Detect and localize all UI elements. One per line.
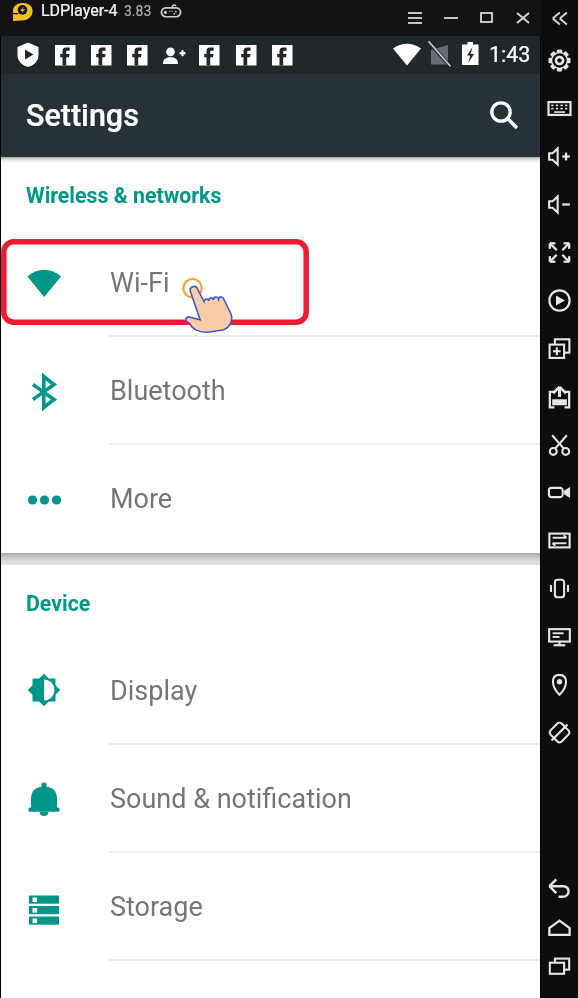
staticText: 1:43 xyxy=(489,42,531,67)
staticText: More xyxy=(110,483,173,515)
button[interactable]: Settings xyxy=(541,36,578,84)
staticText: Display xyxy=(110,675,198,707)
button[interactable]: Operation recorder xyxy=(541,276,578,324)
button[interactable]: Maximize xyxy=(469,0,505,36)
button[interactable]: Display xyxy=(1,637,540,745)
button[interactable]: Storage xyxy=(1,853,540,961)
staticText: Device xyxy=(26,591,91,616)
staticText: Bluetooth xyxy=(110,375,226,407)
staticText: Sound & notification xyxy=(110,783,352,815)
button[interactable]: Back xyxy=(541,864,578,912)
button[interactable]: Shake xyxy=(541,564,578,612)
staticText: 3.83 xyxy=(124,3,152,19)
staticText: Wireless & networks xyxy=(26,183,222,208)
button[interactable]: Location xyxy=(541,660,578,708)
button[interactable]: Menu xyxy=(397,0,433,36)
button[interactable]: Volume up xyxy=(541,132,578,180)
staticText: Settings xyxy=(26,98,139,134)
button[interactable]: Recents xyxy=(541,941,578,989)
button[interactable]: More xyxy=(1,445,540,553)
staticText: Storage xyxy=(110,891,203,923)
button[interactable]: Search xyxy=(468,74,540,157)
button[interactable]: Home xyxy=(541,904,578,952)
button[interactable]: Minimize xyxy=(433,0,469,36)
button[interactable]: Sound & notification xyxy=(1,745,540,853)
button[interactable]: Virtual display xyxy=(541,612,578,660)
button[interactable]: Fullscreen xyxy=(541,228,578,276)
button[interactable]: Keyboard xyxy=(541,84,578,132)
button[interactable]: Multi instance xyxy=(541,324,578,372)
button[interactable]: Share xyxy=(541,516,578,564)
button[interactable]: Bluetooth xyxy=(1,337,540,445)
staticText: Wi-Fi xyxy=(110,267,170,299)
staticText: LDPlayer-4 xyxy=(41,1,118,20)
button[interactable]: Rotate xyxy=(541,708,578,756)
button[interactable]: Install APK xyxy=(541,372,578,420)
button[interactable]: Close xyxy=(505,0,541,36)
button[interactable]: Screen record xyxy=(541,468,578,516)
button[interactable]: Wi-Fi xyxy=(1,229,540,337)
button[interactable]: Volume down xyxy=(541,180,578,228)
button[interactable]: Screenshot xyxy=(541,420,578,468)
button[interactable]: Collapse sidebar xyxy=(541,0,578,36)
